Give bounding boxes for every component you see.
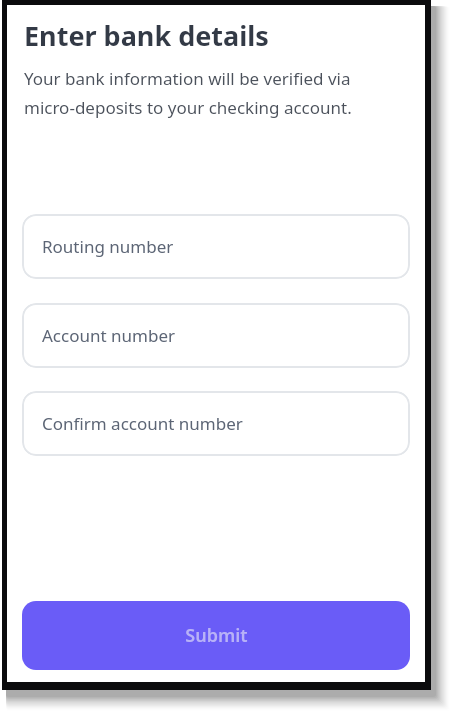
button[interactable]: Routing number <box>22 214 410 279</box>
button[interactable]: Confirm account number <box>22 391 410 456</box>
staticText: Submit <box>185 623 248 648</box>
button[interactable]: Submit <box>22 601 410 670</box>
staticText: Routing number <box>42 235 174 258</box>
staticText: Enter bank details <box>24 17 269 54</box>
staticText: Your bank information will be verified v… <box>24 67 403 119</box>
staticText: Account number <box>42 324 176 347</box>
button[interactable]: Account number <box>22 303 410 368</box>
staticText: Confirm account number <box>42 412 243 435</box>
